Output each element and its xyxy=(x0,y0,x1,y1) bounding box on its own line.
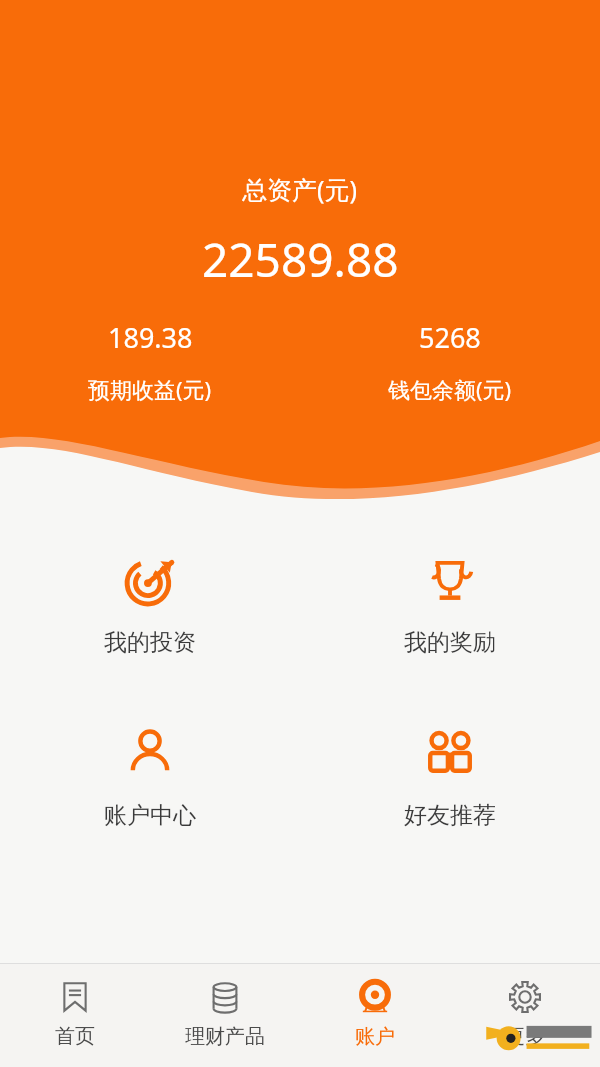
button[interactable]: 我的投资 xyxy=(0,548,300,663)
other: 账户中心 xyxy=(124,727,176,779)
staticText: 22589.88 xyxy=(202,228,399,291)
button[interactable]: 账户中心 xyxy=(0,721,300,836)
staticText: 好友推荐 xyxy=(404,801,496,830)
staticText: 5268 xyxy=(419,319,481,356)
staticText: 我的投资 xyxy=(104,628,196,657)
button[interactable]: 更多 xyxy=(450,964,600,1067)
other: 更多 xyxy=(506,978,544,1016)
other: 我的投资 xyxy=(124,554,176,606)
button[interactable]: 好友推荐 xyxy=(300,721,600,836)
other: 我的奖励 xyxy=(424,554,476,606)
staticText: 我的奖励 xyxy=(404,628,496,657)
other: 理财产品 xyxy=(206,978,244,1016)
staticText: 账户中心 xyxy=(104,801,196,830)
button[interactable]: 我的奖励 xyxy=(300,548,600,663)
staticText: 账户 xyxy=(355,1024,395,1049)
button[interactable]: 首页 xyxy=(0,964,150,1067)
staticText: 189.38 xyxy=(108,319,193,356)
other: 账户 xyxy=(356,978,394,1016)
staticText: 钱包余额(元) xyxy=(388,374,512,404)
staticText: 首页 xyxy=(55,1024,95,1049)
staticText: 更多 xyxy=(505,1024,545,1049)
button[interactable]: 账户 xyxy=(300,964,450,1067)
button[interactable]: 理财产品 xyxy=(150,964,300,1067)
other: 首页 xyxy=(56,978,94,1016)
other: 好友推荐 xyxy=(424,727,476,779)
staticText: 总资产(元) xyxy=(242,172,358,206)
staticText: 理财产品 xyxy=(185,1024,265,1049)
staticText: 预期收益(元) xyxy=(88,374,212,404)
